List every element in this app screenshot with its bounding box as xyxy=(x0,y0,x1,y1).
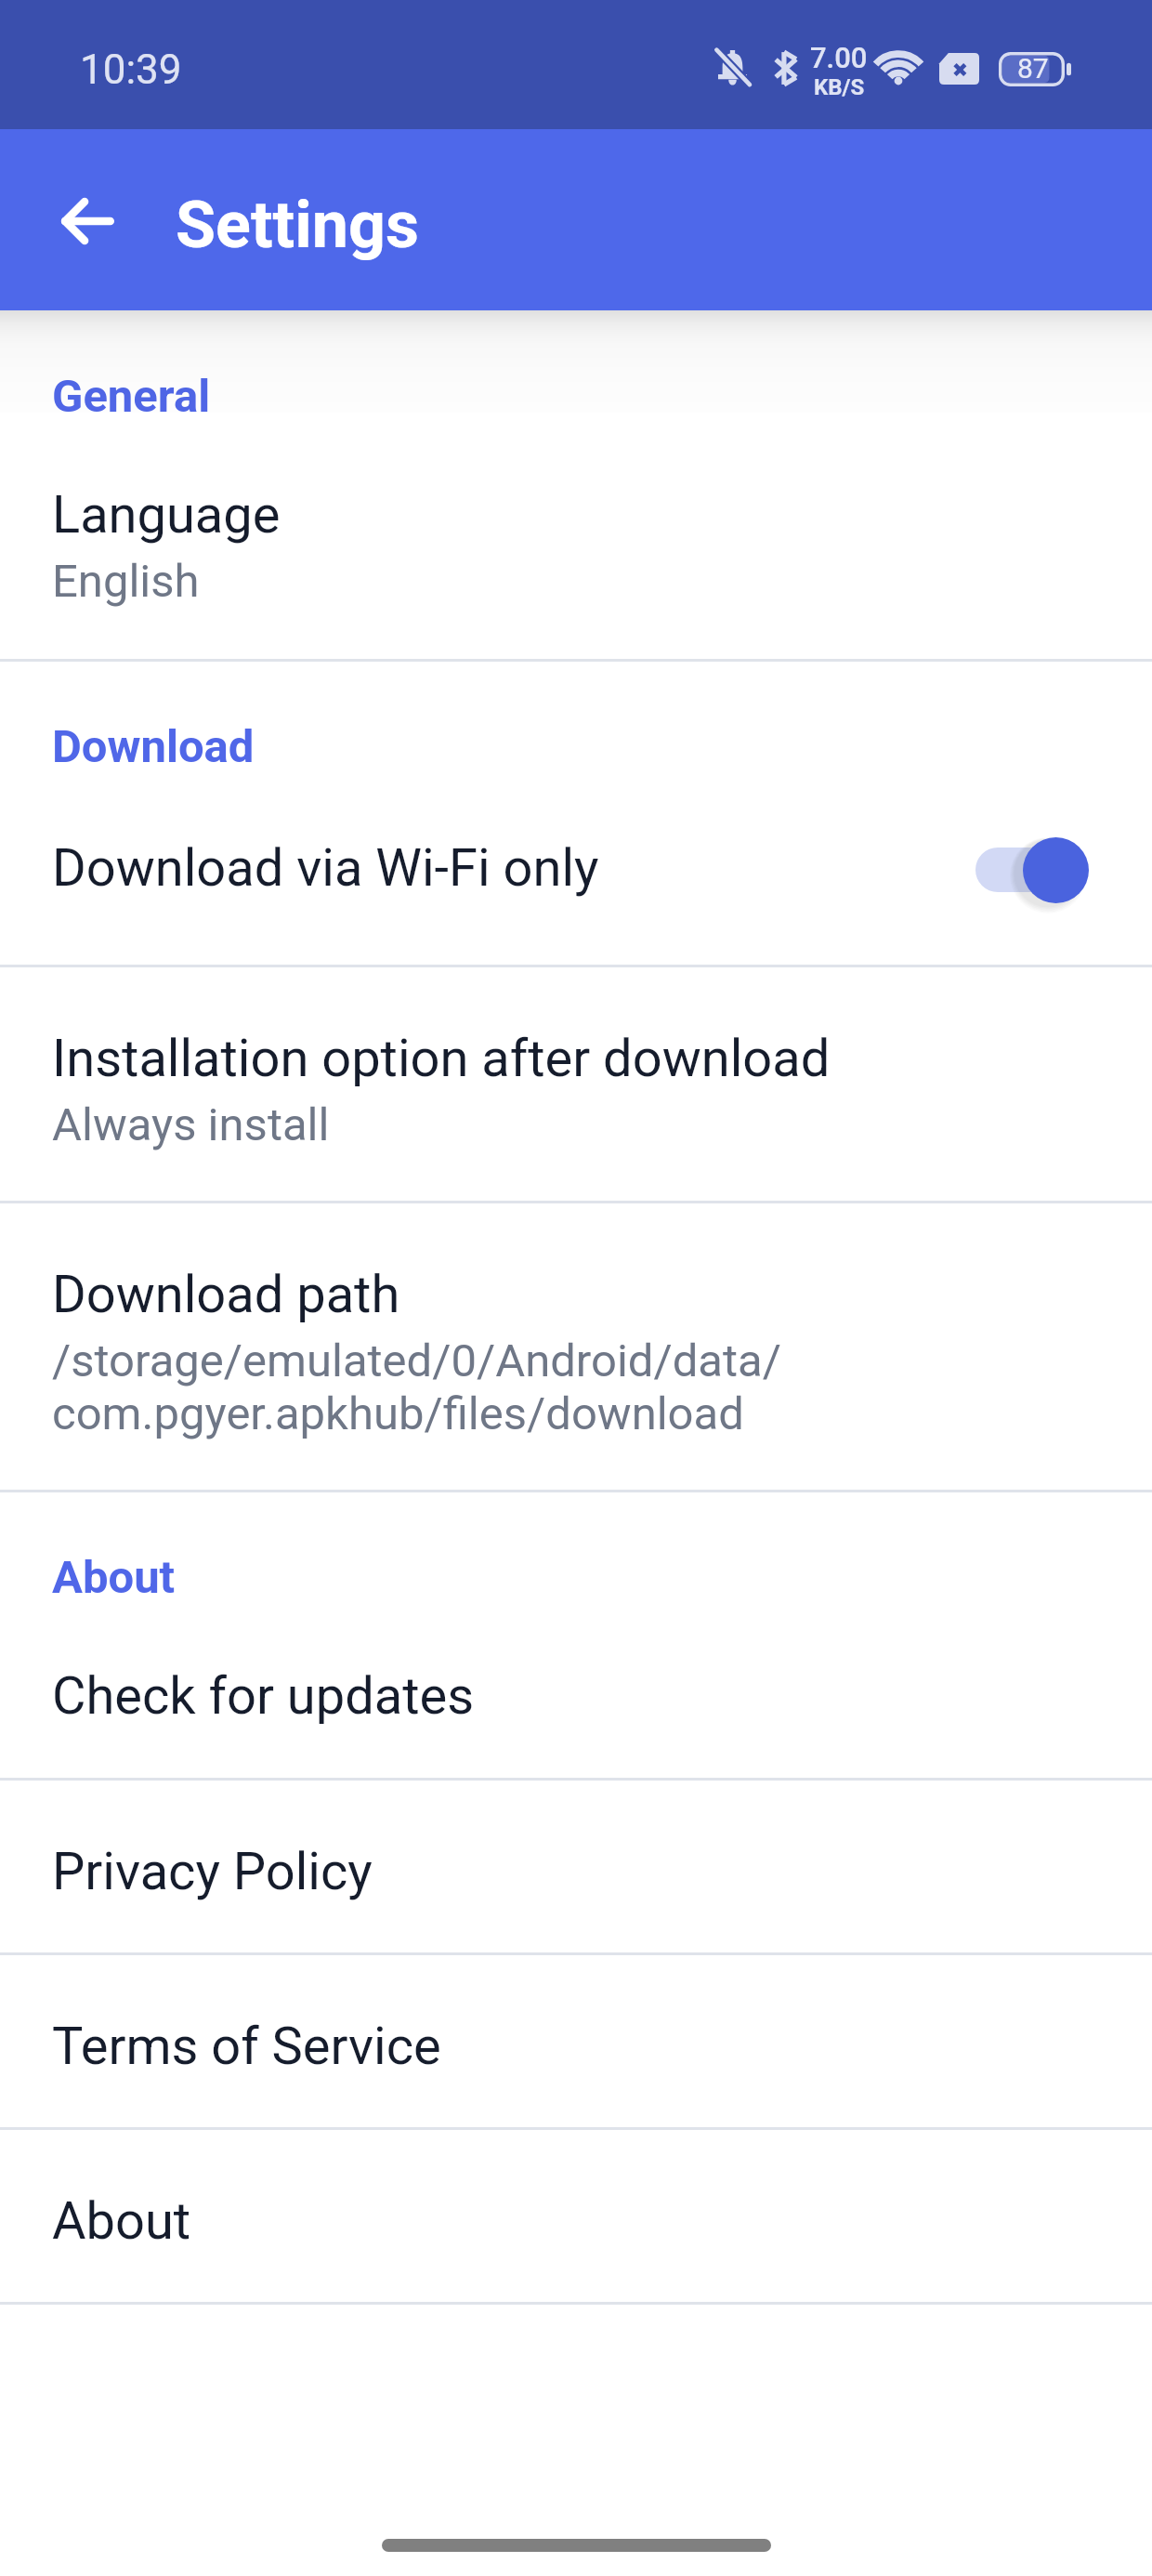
button[interactable]: About xyxy=(0,2130,1152,2302)
staticText: 87 xyxy=(1017,52,1049,85)
staticText: About xyxy=(52,1551,176,1604)
staticText: Download path xyxy=(52,1264,400,1325)
staticText: KB/S xyxy=(814,74,865,100)
button[interactable]: Terms of Service xyxy=(0,1955,1152,2127)
staticText: Terms of Service xyxy=(52,2016,441,2077)
button[interactable]: Download via Wi-Fi only xyxy=(972,831,1089,909)
button[interactable]: Download via Wi-Fi only xyxy=(0,788,1152,965)
button[interactable]: Installation option after download xyxy=(0,967,1152,1201)
staticText: Check for updates xyxy=(52,1665,475,1727)
staticText: com.pgyer.apkhub/files/download xyxy=(52,1387,744,1440)
staticText: Download via Wi-Fi only xyxy=(52,837,599,899)
staticText: Installation option after download xyxy=(52,1028,831,1089)
staticText: English xyxy=(52,555,200,608)
staticText: General xyxy=(52,370,211,422)
button[interactable]: Download path xyxy=(0,1203,1152,1490)
staticText: About xyxy=(52,2190,191,2252)
button[interactable]: Privacy Policy xyxy=(0,1781,1152,1952)
staticText: Always install xyxy=(52,1098,330,1151)
staticText: 10:39 xyxy=(80,46,182,94)
button[interactable]: Language xyxy=(0,422,1152,659)
staticText: 7.00 xyxy=(810,41,868,74)
staticText: /storage/emulated/0/Android/data/ xyxy=(52,1334,781,1387)
button[interactable]: Back xyxy=(43,177,132,266)
button[interactable]: Check for updates xyxy=(0,1604,1152,1778)
staticText: Privacy Policy xyxy=(52,1841,373,1902)
staticText: Download xyxy=(52,720,255,773)
staticText: Language xyxy=(52,484,281,545)
staticText: Settings xyxy=(176,187,419,263)
